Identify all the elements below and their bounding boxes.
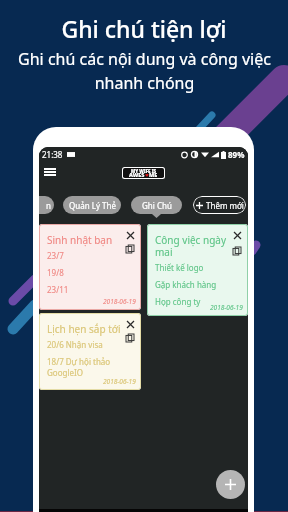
button[interactable]: Add note — [216, 470, 245, 499]
staticText: ME — [149, 171, 158, 178]
staticText: Lịch hẹn sắp tới — [47, 322, 137, 336]
button[interactable]: n — [39, 196, 54, 214]
button[interactable]: Sinh nhật bạn — [39, 224, 141, 310]
staticText: Gặp khách hàng — [155, 279, 239, 290]
staticText: 21:38 — [42, 149, 63, 160]
button[interactable]: Close note — [123, 317, 137, 331]
staticText: 2018-06-19 — [103, 297, 136, 306]
staticText: Công việc ngày mai — [155, 233, 227, 259]
button[interactable]: Quản Lý Thẻ — [63, 196, 121, 214]
staticText: 2018-06-19 — [210, 303, 243, 312]
staticText: 89% — [228, 149, 245, 160]
button[interactable]: Close note — [230, 228, 244, 242]
button[interactable]: Công việc ngày mai — [147, 224, 248, 316]
button[interactable]: Copy note — [123, 242, 137, 256]
button[interactable]: Close note — [123, 228, 137, 242]
staticText: 19/8 — [47, 267, 131, 278]
staticText: Thêm mới — [206, 200, 244, 211]
staticText: Ghi Chú — [142, 200, 172, 211]
staticText: Ghi chú tiện lợi — [61, 13, 227, 44]
staticText: Sinh nhật bạn — [47, 233, 137, 247]
staticText: 2018-06-19 — [103, 377, 136, 386]
button[interactable]: Menu — [40, 162, 60, 182]
staticText: MY WIFE IS — [123, 168, 164, 174]
staticText: Quản Lý Thẻ — [69, 200, 116, 211]
staticText: 20/6 Nhận visa — [47, 339, 131, 350]
button[interactable]: Copy note — [123, 331, 137, 345]
staticText: Họp công ty — [155, 296, 239, 307]
staticText: AWES — [129, 171, 145, 178]
button[interactable]: Copy note — [230, 244, 244, 258]
button[interactable]: Thêm mới — [193, 196, 246, 214]
button[interactable]: Lịch hẹn sắp tới — [39, 313, 141, 390]
staticText: 18/7 Dự hội thảo GoogleIO — [47, 356, 131, 378]
staticText: n — [46, 200, 51, 211]
staticText: 23/11 — [47, 284, 131, 295]
button[interactable]: Ghi Chú — [131, 196, 182, 214]
staticText: Ghi chú các nội dung và công việc nhanh … — [18, 48, 271, 94]
staticText: Thiết kế logo — [155, 262, 239, 273]
staticText: 23/7 — [47, 250, 131, 261]
